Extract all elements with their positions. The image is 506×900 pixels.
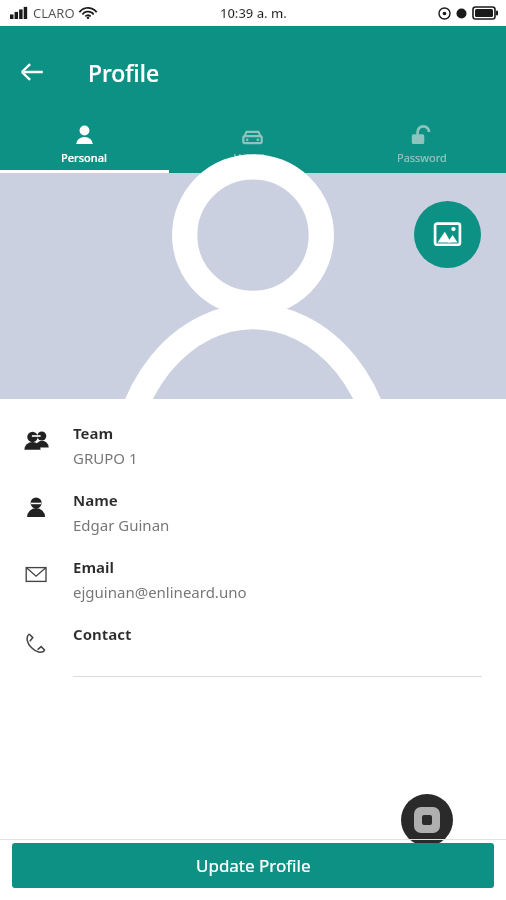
staticText: Vehicle bbox=[234, 150, 271, 165]
staticText: CLARO bbox=[33, 4, 75, 22]
button[interactable]: Email bbox=[0, 557, 506, 602]
button[interactable]: Team bbox=[0, 423, 506, 468]
button[interactable]: Back bbox=[10, 50, 54, 94]
button[interactable]: Stop recording bbox=[401, 794, 453, 846]
button[interactable]: Change photo bbox=[414, 201, 481, 268]
staticText: Password bbox=[397, 150, 447, 165]
staticText: Name bbox=[73, 490, 118, 510]
staticText: 10:39 a. m. bbox=[220, 4, 287, 22]
button[interactable]: Update Profile bbox=[12, 843, 494, 888]
staticText: Profile bbox=[88, 57, 160, 88]
staticText: Email bbox=[73, 557, 114, 577]
staticText: Team bbox=[73, 423, 114, 443]
staticText: ejguinan@enlineard.uno bbox=[73, 582, 247, 602]
staticText: Contact bbox=[73, 624, 132, 644]
button[interactable]: Contact bbox=[0, 624, 506, 654]
button[interactable]: Personal bbox=[0, 118, 168, 170]
button[interactable]: Vehicle bbox=[168, 118, 337, 170]
button[interactable]: Password bbox=[337, 118, 506, 170]
button[interactable]: Name bbox=[0, 490, 506, 535]
staticText: Update Profile bbox=[196, 854, 311, 877]
staticText: Edgar Guinan bbox=[73, 515, 170, 535]
staticText: GRUPO 1 bbox=[73, 448, 138, 468]
staticText: Personal bbox=[61, 150, 107, 165]
